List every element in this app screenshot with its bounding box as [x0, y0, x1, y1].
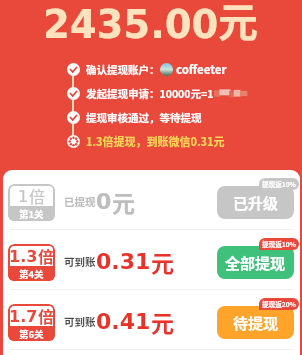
staticText: 提现返10%: [262, 239, 296, 249]
staticText: 提现返10%: [262, 179, 296, 189]
staticText: 第6关: [19, 327, 44, 341]
staticText: 第1关: [19, 207, 44, 221]
staticText: 可到账: [64, 254, 96, 269]
button[interactable]: 全部提现: [217, 246, 294, 279]
staticText: 1.3倍提现，到账微信0.31元: [86, 133, 225, 149]
staticText: 已升级: [233, 192, 279, 214]
staticText: coffeeter: [176, 61, 227, 78]
staticText: 2435.00: [43, 2, 219, 47]
staticText: 元: [112, 185, 135, 218]
staticText: 0.41: [96, 309, 151, 335]
staticText: 倍: [38, 244, 55, 266]
staticText: 0: [96, 189, 112, 215]
staticText: 倍: [38, 304, 55, 326]
staticText: 1.7: [9, 307, 38, 326]
button[interactable]: 1: [3, 170, 300, 229]
staticText: 确认提现账户：: [86, 62, 160, 77]
staticText: 可到账: [64, 314, 96, 329]
button[interactable]: 已升级: [217, 186, 294, 219]
staticText: 倍: [29, 184, 46, 206]
staticText: 提现审核通过，等待提现: [86, 110, 202, 125]
staticText: 提现返20%: [262, 299, 296, 309]
staticText: 发起提现申请：10000元=1: [86, 86, 214, 101]
button[interactable]: 待提现: [217, 306, 294, 339]
button[interactable]: 1.3: [3, 230, 300, 289]
staticText: 0.31: [96, 249, 151, 275]
staticText: 已提现: [64, 194, 96, 209]
staticText: 1: [18, 187, 29, 206]
staticText: 1.3: [9, 247, 38, 266]
staticText: 元: [151, 305, 174, 338]
button[interactable]: 1.7: [3, 290, 300, 349]
staticText: 第4关: [19, 267, 44, 281]
staticText: 待提现: [233, 312, 279, 334]
staticText: 元: [151, 245, 174, 278]
staticText: 元: [218, 0, 258, 49]
staticText: 全部提现: [225, 252, 286, 274]
